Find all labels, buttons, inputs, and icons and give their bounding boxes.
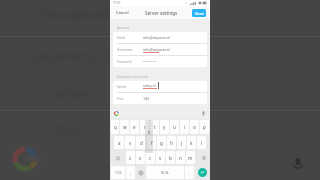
button[interactable]: c: [146, 151, 155, 164]
staticText: Done: [195, 11, 204, 16]
button[interactable]: Done: [192, 9, 206, 17]
staticText: a: [118, 140, 121, 146]
staticText: 143: [143, 96, 150, 101]
staticText: Email: [117, 36, 126, 40]
button[interactable]: a: [114, 136, 124, 149]
button[interactable]: o: [190, 120, 199, 134]
button[interactable]: Cancel: [114, 9, 131, 16]
button[interactable]: Enter: [198, 168, 207, 177]
staticText: 11:01: [113, 1, 121, 5]
button[interactable]: g: [157, 136, 166, 149]
staticText: m: [188, 155, 193, 161]
staticText: l: [201, 140, 203, 146]
button[interactable]: r: [140, 120, 149, 134]
button[interactable]: Voice input: [200, 110, 207, 117]
staticText: o: [193, 124, 196, 130]
button[interactable]: u: [170, 120, 179, 134]
staticText: Port: [117, 97, 124, 101]
staticText: Incoming mail server: [117, 75, 149, 79]
button[interactable]: t: [150, 120, 159, 134]
button[interactable]: f: [147, 136, 156, 149]
staticText: f: [151, 140, 153, 146]
staticText: q: [114, 124, 117, 130]
button[interactable]: Backspace: [196, 151, 209, 164]
button[interactable]: n: [176, 151, 185, 164]
button[interactable]: h: [167, 136, 176, 149]
button[interactable]: q: [111, 120, 119, 134]
button[interactable]: x: [136, 151, 145, 164]
staticText: .: [189, 170, 191, 176]
button[interactable]: m: [186, 151, 195, 164]
staticText: Username: [117, 48, 133, 52]
staticText: Server settings: [145, 10, 178, 16]
button[interactable]: Google: [113, 110, 120, 117]
staticText: c: [149, 155, 152, 161]
staticText: r: [144, 124, 146, 130]
staticText: i: [184, 124, 186, 130]
staticText: j: [181, 140, 183, 146]
staticText: b: [169, 155, 172, 161]
staticText: smtp.nl: [143, 83, 156, 88]
staticText: d: [140, 140, 143, 146]
staticText: Incoming mail s: [33, 46, 138, 65]
staticText: y: [163, 124, 166, 130]
staticText: t: [154, 124, 156, 130]
button[interactable]: p: [200, 120, 209, 134]
staticText: info@anyuser.nl: [143, 35, 170, 40]
button[interactable]: i: [180, 120, 189, 134]
button[interactable]: Port: [113, 93, 207, 104]
staticText: v: [159, 155, 162, 161]
staticText: Server: [117, 85, 127, 89]
staticText: g: [160, 140, 163, 146]
staticText: e: [133, 124, 136, 130]
staticText: n: [179, 155, 182, 161]
button[interactable]: j: [177, 136, 186, 149]
staticText: Password: [117, 60, 132, 64]
button[interactable]: e: [130, 120, 139, 134]
button[interactable]: ,: [126, 166, 135, 179]
button[interactable]: Emoji: [136, 166, 145, 179]
button[interactable]: z: [126, 151, 135, 164]
staticText: p: [203, 124, 206, 130]
button[interactable]: Password: [113, 56, 207, 67]
button[interactable]: k: [187, 136, 196, 149]
staticText: s: [129, 140, 132, 146]
staticText: Cancel: [116, 10, 129, 15]
button[interactable]: y: [160, 120, 169, 134]
button[interactable]: Server: [113, 81, 207, 92]
button[interactable]: Username: [113, 44, 207, 55]
button[interactable]: ?123: [111, 166, 125, 179]
staticText: h: [170, 140, 173, 146]
staticText: ?123: [115, 171, 122, 175]
button[interactable]: d: [136, 136, 146, 149]
staticText: ,: [130, 170, 132, 176]
button[interactable]: s: [125, 136, 135, 149]
button[interactable]: Shift: [111, 151, 125, 164]
staticText: u: [173, 124, 176, 130]
button[interactable]: l: [197, 136, 206, 149]
staticText: x: [139, 155, 142, 161]
staticText: c: [148, 129, 151, 136]
staticText: k: [190, 140, 193, 146]
staticText: z: [129, 155, 132, 161]
button[interactable]: w: [120, 120, 129, 134]
button[interactable]: b: [166, 151, 175, 164]
staticText: w: [123, 124, 127, 130]
button[interactable]: .: [185, 166, 194, 179]
staticText: Account: [117, 26, 130, 30]
button[interactable]: v: [156, 151, 165, 164]
staticText: info@anyuser.nl: [143, 47, 170, 52]
button[interactable]: Email: [113, 32, 207, 43]
button[interactable]: NL-NL: [146, 166, 184, 179]
other: Microphone: [290, 156, 306, 172]
staticText: NL-NL: [161, 171, 170, 175]
staticText: ••••••••••: [143, 59, 157, 64]
